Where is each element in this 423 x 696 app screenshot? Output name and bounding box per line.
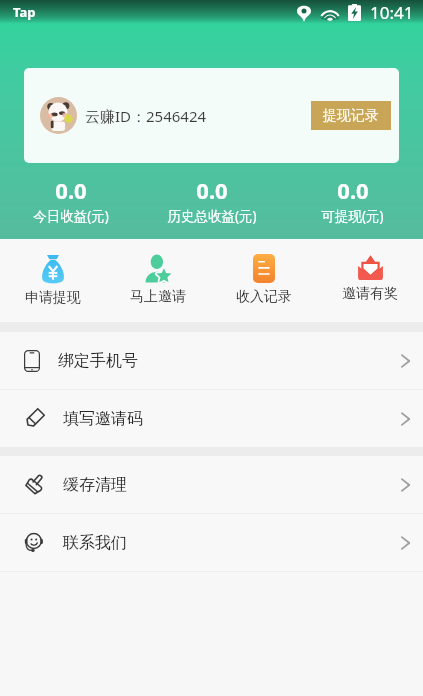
staticText: 云赚ID：2546424 bbox=[85, 106, 207, 126]
button[interactable]: 邀请有奖 bbox=[317, 239, 423, 322]
button[interactable]: 绑定手机号 bbox=[0, 332, 423, 389]
button[interactable]: 联系我们 bbox=[0, 514, 423, 571]
staticText: Tap bbox=[13, 3, 36, 21]
staticText: 联系我们 bbox=[63, 533, 127, 553]
staticText: 今日收益(元) bbox=[33, 207, 109, 225]
staticText: 申请提现 bbox=[25, 289, 81, 307]
staticText: 填写邀请码 bbox=[63, 409, 143, 429]
staticText: 可提现(元) bbox=[321, 207, 384, 225]
button[interactable]: 收入记录 bbox=[211, 239, 317, 322]
staticText: 提现记录 bbox=[323, 107, 379, 125]
staticText: 马上邀请 bbox=[130, 288, 186, 306]
staticText: 历史总收益(元) bbox=[167, 207, 257, 225]
button[interactable]: 马上邀请 bbox=[105, 239, 211, 322]
button[interactable]: 申请提现 bbox=[0, 239, 105, 322]
staticText: 0.0 bbox=[55, 175, 87, 205]
staticText: 10:41 bbox=[370, 1, 414, 24]
staticText: 收入记录 bbox=[236, 288, 292, 306]
button[interactable]: 填写邀请码 bbox=[0, 390, 423, 447]
button[interactable]: 缓存清理 bbox=[0, 456, 423, 513]
button[interactable]: 提现记录 bbox=[311, 101, 391, 130]
staticText: 0.0 bbox=[196, 175, 228, 205]
staticText: 缓存清理 bbox=[63, 475, 127, 495]
staticText: 绑定手机号 bbox=[58, 351, 138, 371]
staticText: 0.0 bbox=[337, 175, 369, 205]
staticText: 邀请有奖 bbox=[342, 285, 398, 303]
